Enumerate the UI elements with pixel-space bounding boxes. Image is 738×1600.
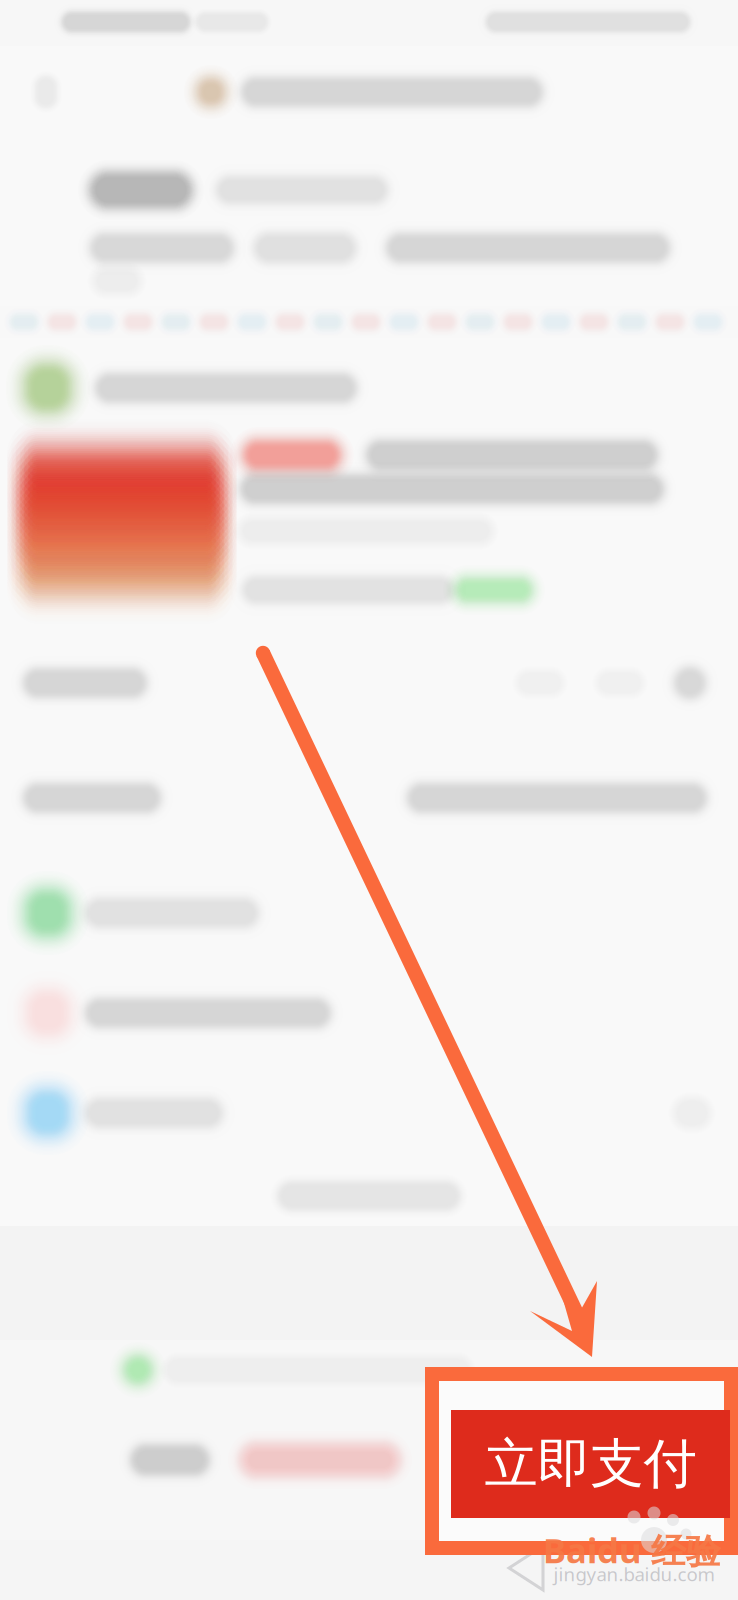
- button[interactable]: [0, 0, 738, 1600]
- button[interactable]: [0, 0, 738, 1600]
- button[interactable]: [0, 0, 738, 1600]
- button[interactable]: [0, 0, 738, 1600]
- staticText: jingyan.baidu.com: [553, 1562, 714, 1586]
- button[interactable]: [0, 0, 738, 1600]
- button[interactable]: 立即支付: [0, 0, 738, 1600]
- button[interactable]: [0, 0, 738, 1600]
- staticText: 立即支付: [484, 1431, 696, 1497]
- staticText: Baidu 经验: [543, 1527, 721, 1573]
- button[interactable]: [0, 0, 738, 1600]
- button[interactable]: [0, 0, 738, 1600]
- button[interactable]: Back: [0, 0, 738, 1600]
